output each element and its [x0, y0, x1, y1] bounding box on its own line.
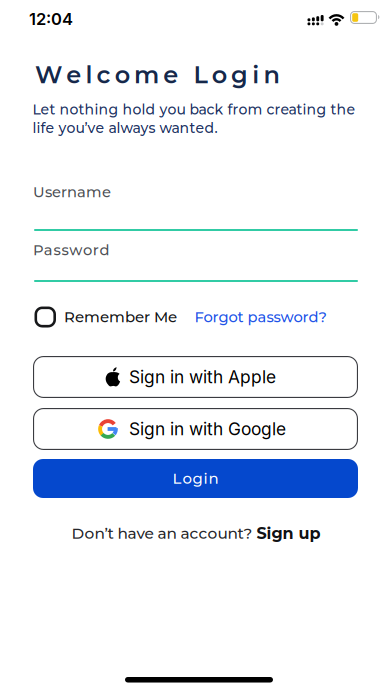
button[interactable]: Login: [33, 459, 358, 498]
staticText: L: [194, 60, 208, 89]
staticText: n: [263, 60, 279, 89]
staticText: Login: [172, 469, 218, 488]
button[interactable]: Sign in with Apple: [33, 356, 358, 398]
staticText: Let nothing hold you back from creating …: [32, 101, 355, 137]
staticText: e: [66, 60, 81, 89]
staticText: Sign up: [256, 523, 320, 543]
staticText: e: [163, 60, 178, 89]
button[interactable]: Forgot password?: [194, 308, 326, 326]
staticText: Don’t have an account?: [71, 524, 256, 543]
button[interactable]: Sign in with Google: [33, 408, 358, 450]
staticText: c: [97, 60, 111, 89]
staticText: l: [85, 60, 92, 89]
staticText: Remember Me: [64, 308, 177, 326]
staticText: Forgot password?: [194, 308, 326, 326]
staticText: Username: [33, 183, 111, 201]
staticText: Sign in with Apple: [129, 366, 276, 387]
staticText: o: [115, 60, 130, 89]
staticText: o: [212, 60, 227, 89]
staticText: m: [134, 60, 159, 89]
button[interactable]: Remember Me: [34, 306, 177, 327]
staticText: g: [231, 60, 248, 89]
button[interactable]: Sign up: [256, 523, 320, 543]
staticText: 12:04: [29, 9, 73, 29]
staticText: Password: [33, 241, 110, 259]
staticText: W: [35, 60, 62, 89]
staticText: i: [252, 60, 259, 89]
staticText: Sign in with Google: [129, 418, 286, 439]
